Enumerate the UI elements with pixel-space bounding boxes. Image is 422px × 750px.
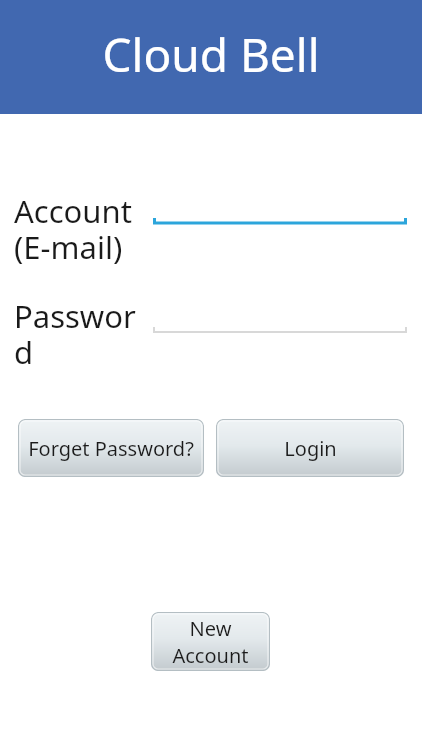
button[interactable]: Login — [216, 419, 404, 477]
staticText: Forget Password? — [28, 435, 194, 462]
staticText: New Account — [151, 615, 270, 669]
button[interactable]: New Account — [151, 612, 270, 671]
staticText: Password — [14, 295, 153, 373]
staticText: Login — [284, 435, 337, 462]
staticText: Account (E-mail) — [14, 190, 132, 268]
button[interactable]: Forget Password? — [18, 419, 204, 477]
staticText: Cloud Bell — [102, 23, 320, 86]
